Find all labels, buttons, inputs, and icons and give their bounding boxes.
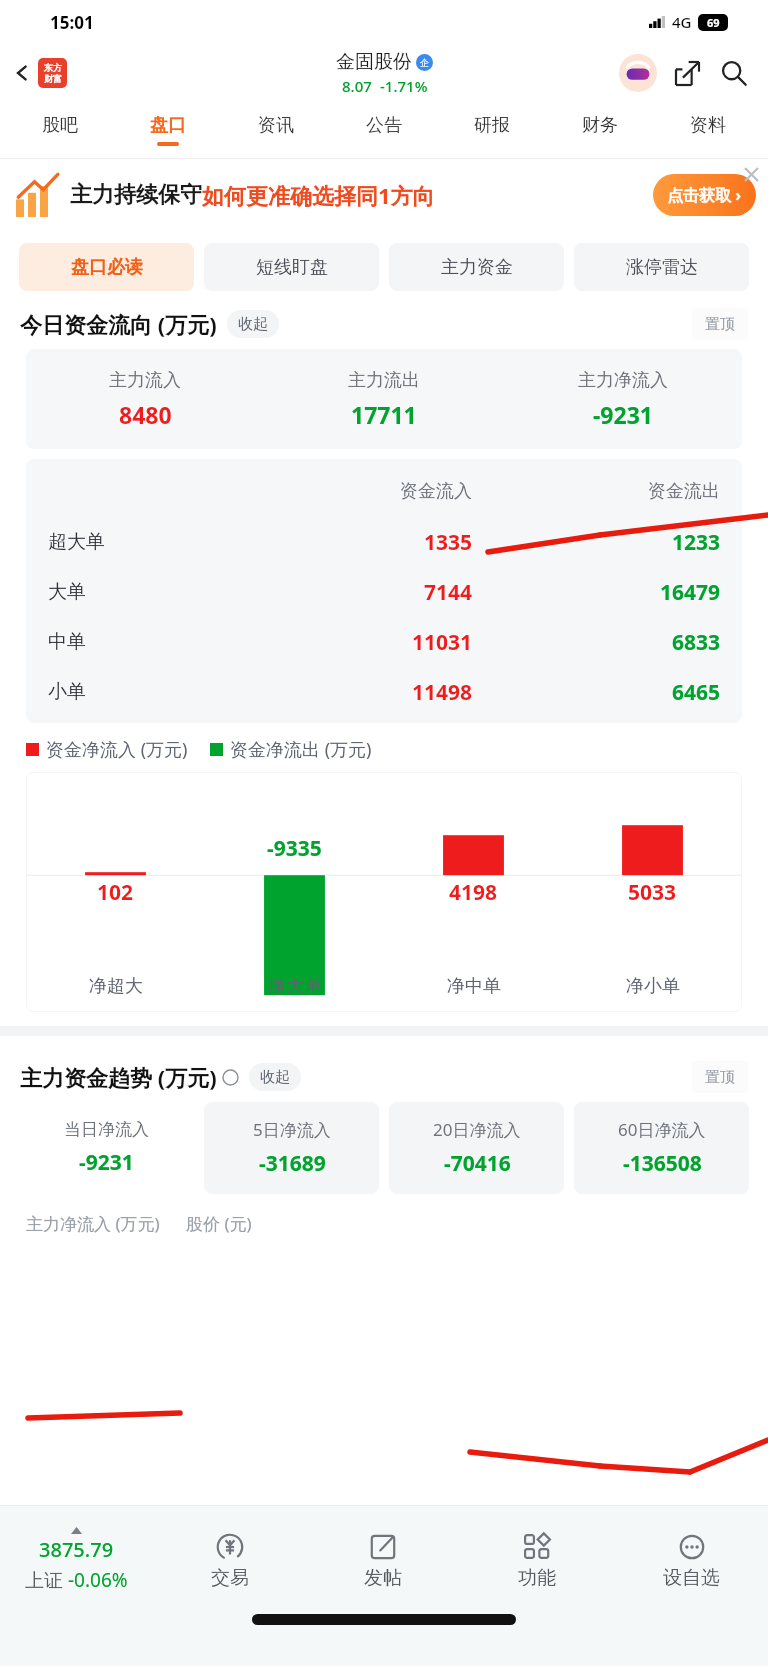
staticText: 3875.79	[39, 1536, 114, 1563]
staticText: 盘口	[150, 114, 186, 137]
button[interactable]: 102	[26, 772, 742, 1012]
button[interactable]: 5日净流入	[204, 1102, 379, 1194]
staticText: 6465	[498, 678, 720, 707]
button[interactable]: 股吧	[6, 102, 114, 158]
staticText: 净超大	[89, 975, 143, 998]
staticText: 交易	[211, 1566, 249, 1590]
button[interactable]: 主力流入	[26, 349, 742, 449]
staticText: 资金净流入 (万元)	[46, 737, 188, 762]
staticText: -9231	[593, 399, 653, 430]
button[interactable]: 置顶	[692, 308, 748, 340]
staticText: 股价 (元)	[186, 1212, 252, 1235]
button[interactable]: 设自选	[614, 1506, 768, 1614]
staticText: 净大单	[268, 975, 322, 998]
button[interactable]: 置顶	[692, 1061, 748, 1093]
staticText: 20日净流入	[433, 1118, 521, 1141]
button[interactable]: 盘口必读	[19, 243, 194, 291]
staticText: -1.71%	[380, 76, 428, 96]
staticText: 短线盯盘	[256, 256, 328, 279]
staticText: 主力资金	[441, 256, 513, 279]
staticText: -9231	[79, 1148, 134, 1177]
button[interactable]: 60日净流入	[574, 1102, 749, 1194]
staticText: 净小单	[626, 975, 680, 998]
staticText: 69	[707, 15, 720, 30]
staticText: 收起	[260, 1068, 290, 1087]
button[interactable]: 研报	[438, 102, 546, 158]
staticText: 资讯	[258, 114, 294, 137]
button[interactable]: 发帖	[306, 1506, 460, 1614]
button[interactable]: AI assistant	[618, 53, 658, 93]
staticText: -70416	[444, 1149, 511, 1178]
staticText: 主力流入	[109, 369, 181, 392]
staticText: 置顶	[705, 1068, 735, 1087]
staticText: 如何更准确选择同1方向	[202, 180, 435, 210]
button[interactable]: 主力资金	[389, 243, 564, 291]
button[interactable]: 涨停雷达	[574, 243, 749, 291]
staticText: 东方	[44, 62, 62, 73]
staticText: 研报	[474, 114, 510, 137]
staticText: 功能	[518, 1566, 556, 1590]
staticText: 60日净流入	[618, 1118, 706, 1141]
button[interactable]: 短线盯盘	[204, 243, 379, 291]
staticText: 资金净流出 (万元)	[230, 737, 372, 762]
staticText: 主力持续保守	[70, 181, 202, 209]
staticText: 16479	[498, 578, 720, 607]
staticText: 8.07	[342, 76, 372, 96]
staticText: 小单	[48, 680, 250, 704]
staticText: 盘口必读	[71, 256, 143, 279]
button[interactable]: 资料	[654, 102, 762, 158]
staticText: 4G	[672, 12, 692, 32]
staticText: 置顶	[705, 315, 735, 334]
staticText: -0.06%	[68, 1567, 128, 1593]
button[interactable]: 当日净流入	[19, 1102, 194, 1194]
staticText: 设自选	[663, 1566, 720, 1590]
button[interactable]: 盘口	[114, 102, 222, 158]
staticText: 11498	[250, 678, 472, 707]
button[interactable]: 交易	[153, 1506, 306, 1614]
button[interactable]: 20日净流入	[389, 1102, 564, 1194]
button[interactable]: 资金流入	[26, 459, 742, 723]
staticText: 1335	[250, 528, 472, 557]
staticText: 6833	[498, 628, 720, 657]
button[interactable]: Back	[8, 54, 71, 92]
button[interactable]: Search	[714, 53, 754, 93]
staticText: 公告	[366, 114, 402, 137]
staticText: 1233	[498, 528, 720, 557]
staticText: 今日资金流向 (万元)	[20, 309, 217, 339]
staticText: 发帖	[364, 1566, 402, 1590]
button[interactable]: 主力持续保守	[0, 159, 768, 231]
staticText: 金固股份	[336, 50, 412, 74]
button[interactable]: Share	[668, 54, 706, 92]
button[interactable]: 资讯	[222, 102, 330, 158]
staticText: 点击获取 ›	[667, 184, 742, 206]
staticText: 17711	[351, 399, 417, 430]
staticText: 财富	[44, 73, 62, 84]
staticText: 企	[420, 57, 429, 68]
staticText: 8480	[119, 399, 172, 430]
button[interactable]: 财务	[546, 102, 654, 158]
staticText: 上证	[25, 1567, 68, 1593]
button[interactable]: 功能	[460, 1506, 614, 1614]
staticText: 当日净流入	[64, 1119, 149, 1140]
staticText: 102	[97, 878, 134, 907]
staticText: 财务	[582, 114, 618, 137]
staticText: 主力流出	[348, 369, 420, 392]
staticText: 净中单	[447, 975, 501, 998]
staticText: 主力净流入 (万元)	[26, 1212, 160, 1235]
staticText: 11031	[250, 628, 472, 657]
button[interactable]: 公告	[330, 102, 438, 158]
staticText: 15:01	[50, 11, 94, 34]
staticText: 大单	[48, 580, 250, 604]
button[interactable]: 收起	[227, 310, 279, 338]
staticText: 5033	[628, 878, 677, 907]
staticText: 5日净流入	[253, 1118, 331, 1141]
button[interactable]: 点击获取 ›	[653, 174, 756, 216]
button[interactable]: Close	[738, 161, 764, 187]
button[interactable]: 3875.79	[0, 1506, 153, 1614]
staticText: -31689	[259, 1149, 326, 1178]
staticText: 资金流出	[498, 480, 720, 503]
button[interactable]: 收起	[249, 1063, 301, 1091]
staticText: 股吧	[42, 114, 78, 137]
staticText: 7144	[250, 578, 472, 607]
staticText: 超大单	[48, 530, 250, 554]
